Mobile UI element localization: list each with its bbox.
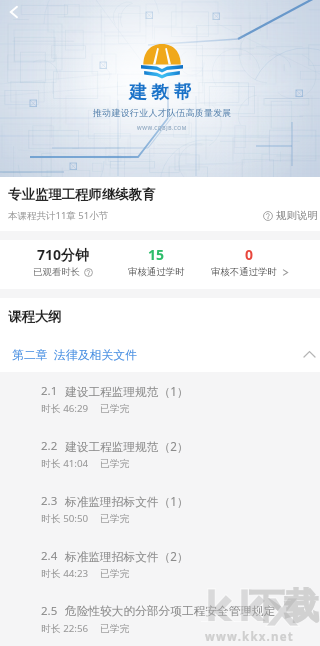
staticText: 本课程共计11章 51小节 [8, 209, 109, 222]
staticText: 已学完 [100, 568, 130, 580]
staticText: 课程大纲 [8, 308, 62, 325]
staticText: 建教帮 [129, 81, 196, 103]
staticText: 时长 44:23 [41, 567, 89, 580]
staticText: 2.3 [41, 493, 58, 509]
staticText: 时长 46:29 [41, 402, 89, 415]
staticText: 2.4 [41, 548, 58, 564]
staticText: 已学完 [100, 403, 130, 415]
staticText: 已学完 [100, 513, 130, 525]
staticText: 时长 22:56 [41, 622, 89, 635]
staticText: 建设工程监理规范（2） [65, 438, 189, 454]
staticText: 审核通过学时 [128, 266, 185, 278]
button[interactable]: 规则说明 [262, 207, 319, 224]
staticText: 危险性较大的分部分项工程安全管理规定 [65, 604, 276, 619]
staticText: 15 [148, 245, 165, 264]
staticText: 2.5 [41, 603, 58, 619]
staticText: 0 [245, 245, 254, 264]
button[interactable]: 第二章 法律及相关文件 [0, 335, 320, 372]
button[interactable]: Back [0, 0, 27, 26]
button[interactable]: 2.1 [0, 372, 320, 427]
staticText: 标准监理招标文件（2） [65, 548, 189, 564]
staticText: WWW.CQBJB.COM [137, 125, 187, 132]
staticText: 下载 [249, 584, 319, 628]
button[interactable]: 710分钟 [16, 240, 110, 282]
staticText: www.kkx.net [205, 629, 294, 645]
button[interactable]: 2.2 [0, 427, 320, 482]
staticText: 2.2 [41, 438, 58, 454]
staticText: 规则说明 [276, 209, 318, 222]
staticText: 710分钟 [37, 245, 90, 264]
staticText: 已学完 [100, 458, 130, 470]
staticText: 2.1 [41, 383, 58, 399]
button[interactable]: 2.4 [0, 537, 320, 592]
staticText: 建设工程监理规范（1） [65, 383, 189, 399]
button[interactable]: 0 [203, 240, 296, 282]
button[interactable]: 2.3 [0, 482, 320, 537]
staticText: 第二章 法律及相关文件 [12, 346, 138, 362]
staticText: 时长 50:50 [41, 512, 89, 525]
staticText: 推动建设行业人才队伍高质量发展 [93, 107, 232, 118]
staticText: 已学完 [100, 623, 130, 635]
staticText: 标准监理招标文件（1） [65, 493, 189, 509]
staticText: 时长 41:04 [41, 457, 89, 470]
staticText: 已观看时长 [33, 266, 80, 278]
button[interactable]: 15 [110, 240, 203, 282]
staticText: 专业监理工程师继续教育 [8, 186, 156, 203]
staticText: 审核不通过学时 [211, 266, 277, 278]
button[interactable]: 2.5 [0, 592, 320, 646]
